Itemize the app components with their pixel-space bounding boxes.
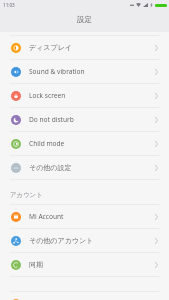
staticText: 設定 [77, 15, 92, 24]
staticText: Lock screen [29, 91, 66, 100]
button[interactable]: Child mode [0, 132, 169, 155]
staticText: その他のアカウント [29, 236, 94, 245]
staticText: 同期 [29, 260, 43, 269]
button[interactable]: ディスプレイ [0, 36, 169, 59]
button[interactable]: その他の設定 [0, 156, 169, 179]
staticText: Child mode [29, 139, 65, 148]
staticText: Sound & vibration [29, 67, 85, 76]
staticText: Do not disturb [29, 115, 74, 124]
staticText: その他の設定 [29, 163, 72, 172]
button[interactable]: Mi Account [0, 205, 169, 228]
staticText: アカウント [10, 191, 43, 199]
button[interactable]: バッテリーとパフォーマンス [0, 292, 169, 300]
staticText: ディスプレイ [29, 43, 72, 52]
button[interactable]: 同期 [0, 253, 169, 276]
button[interactable]: Lock screen [0, 84, 169, 107]
button[interactable]: その他のアカウント [0, 229, 169, 252]
button[interactable]: Sound & vibration [0, 60, 169, 83]
staticText: 11:03 [3, 2, 15, 8]
staticText: Mi Account [29, 212, 64, 221]
button[interactable]: Do not disturb [0, 108, 169, 131]
